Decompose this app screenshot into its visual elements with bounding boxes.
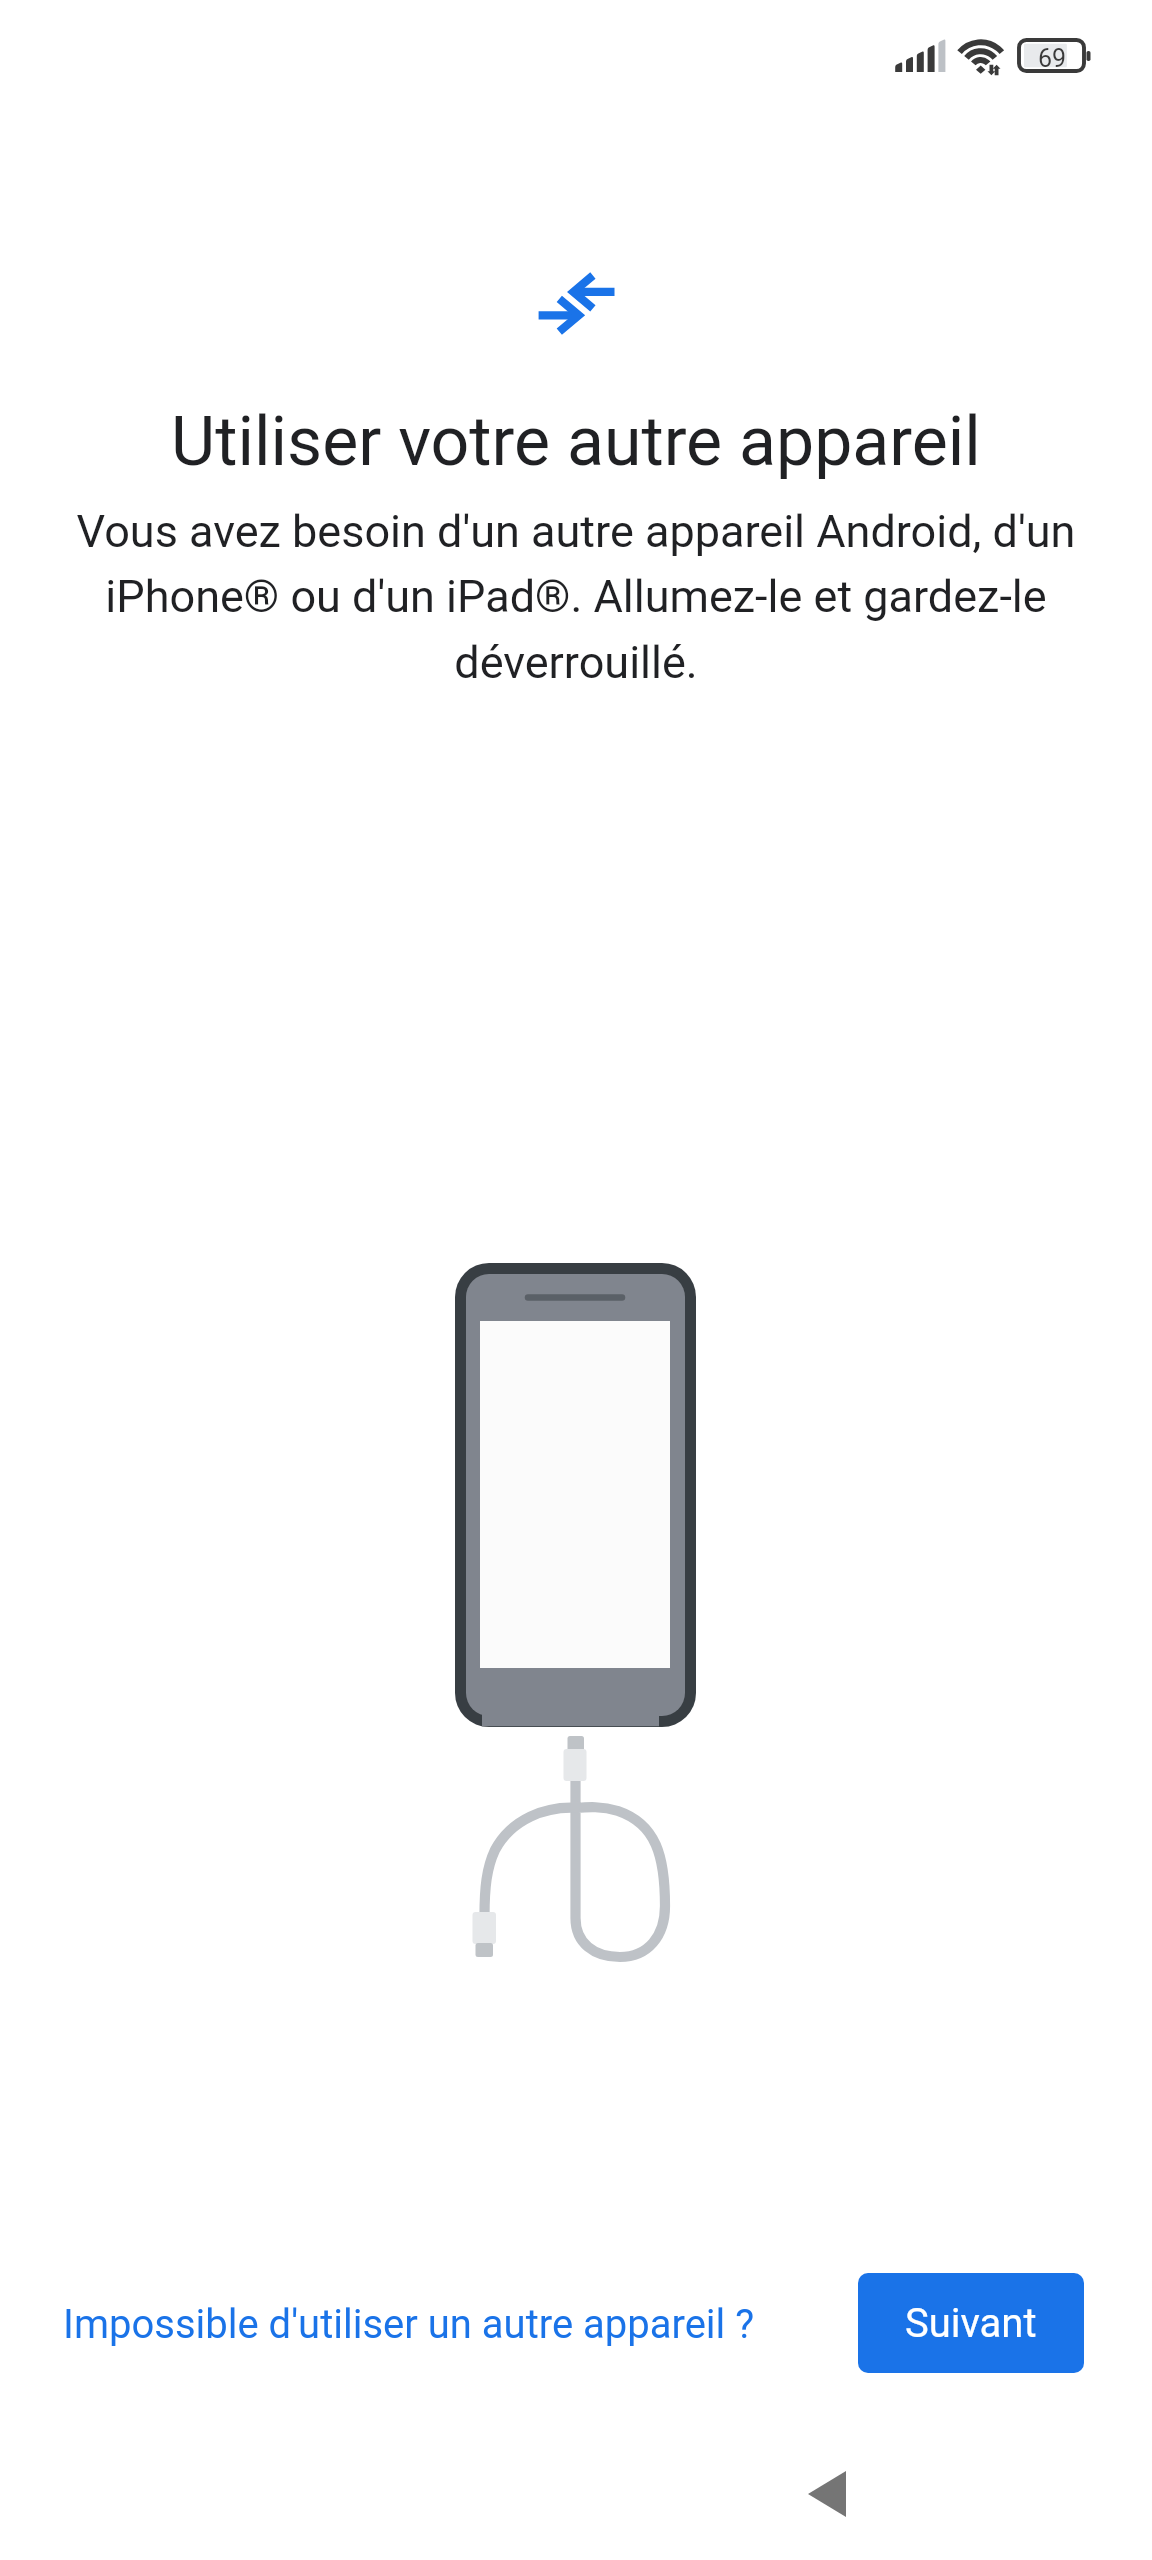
button[interactable]: Impossible d'utiliser un autre appareil …: [39, 2289, 779, 2360]
staticText: Utiliser votre autre appareil: [40, 402, 1112, 482]
button[interactable]: Back: [771, 2438, 883, 2550]
staticText: Impossible d'utiliser un autre appareil …: [63, 2301, 755, 2348]
button[interactable]: Suivant: [858, 2273, 1084, 2373]
staticText: 69: [1038, 44, 1067, 73]
staticText: Suivant: [905, 2300, 1037, 2347]
staticText: Vous avez besoin d'un autre appareil And…: [38, 505, 1114, 689]
